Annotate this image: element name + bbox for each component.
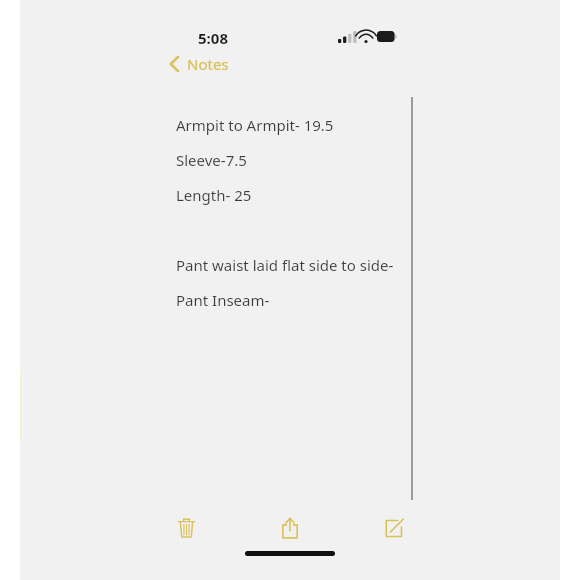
button[interactable]: Delete bbox=[166, 508, 206, 548]
staticText: Pant waist laid flat side to side- bbox=[176, 255, 394, 275]
staticText: Sleeve-7.5 bbox=[176, 150, 247, 170]
button[interactable]: Back bbox=[168, 52, 229, 76]
staticText: Notes bbox=[187, 54, 229, 74]
staticText: Length- 25 bbox=[176, 185, 252, 205]
other: Back bbox=[168, 55, 182, 73]
staticText: Pant Inseam- bbox=[176, 290, 270, 310]
staticText: 5:08 bbox=[198, 28, 228, 48]
button[interactable]: Share bbox=[270, 508, 310, 548]
button[interactable]: New note bbox=[373, 508, 413, 548]
staticText: Armpit to Armpit- 19.5 bbox=[176, 115, 334, 135]
